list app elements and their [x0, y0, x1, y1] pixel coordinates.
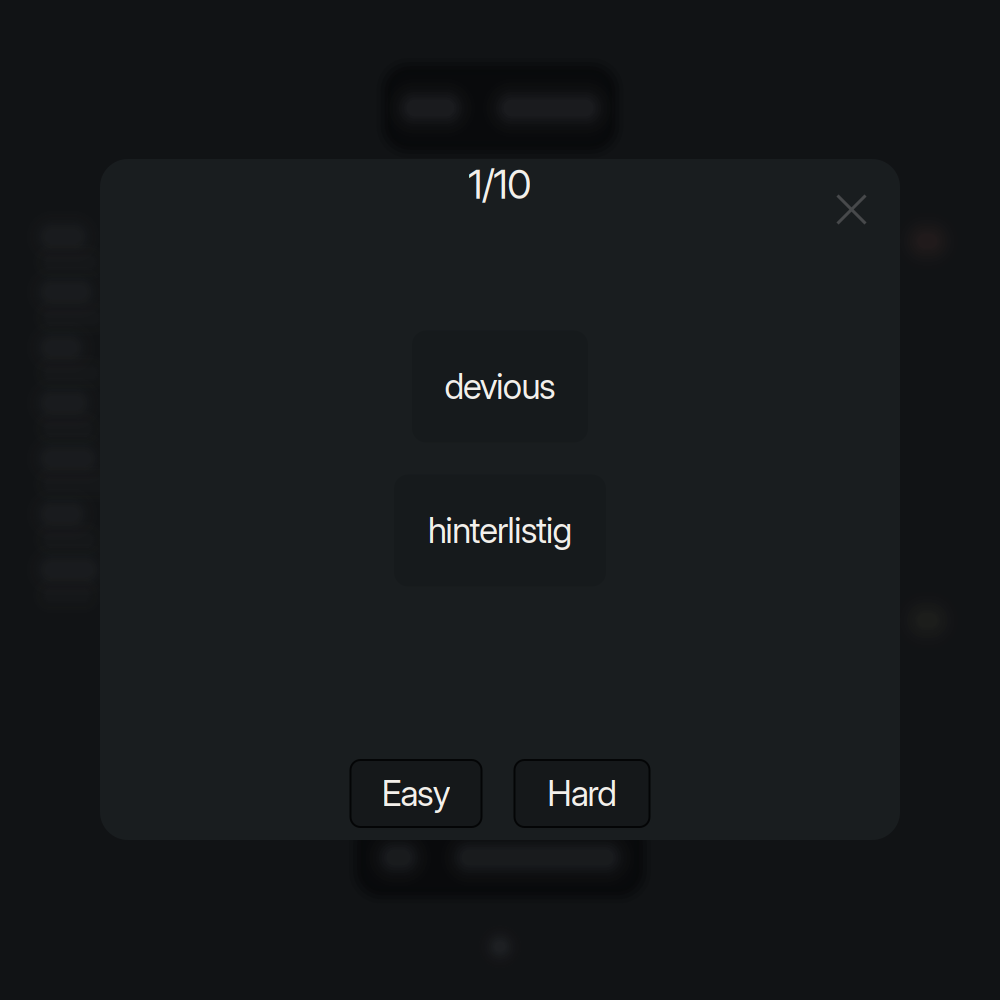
button[interactable]: Hard — [514, 760, 649, 827]
staticText: Easy — [382, 772, 450, 814]
staticText: Hard — [547, 772, 617, 814]
staticText: devious — [444, 365, 556, 407]
staticText: 1/10 — [468, 160, 532, 208]
button[interactable]: Close — [820, 178, 883, 241]
button[interactable]: Easy — [350, 760, 481, 827]
staticText: hinterlistig — [428, 509, 572, 551]
